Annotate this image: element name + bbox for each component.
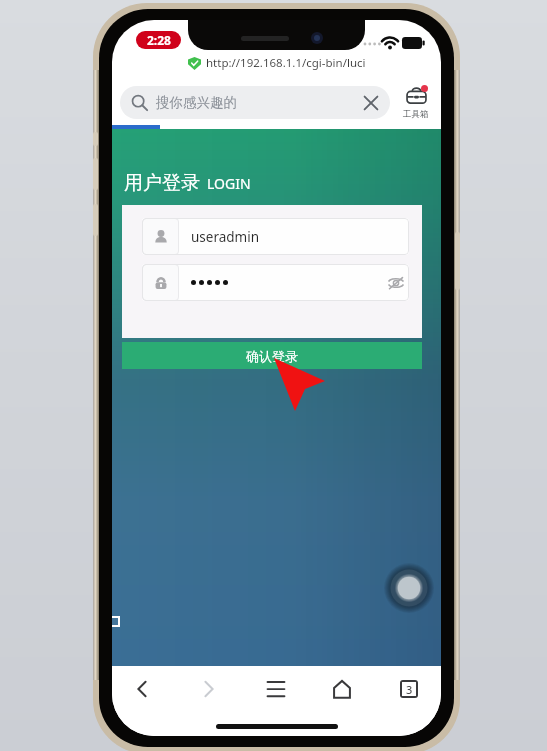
staticText: 3 — [406, 682, 413, 696]
staticText: http://192.168.1.1/cgi-bin/luci — [206, 55, 366, 71]
button[interactable]: 确认登录 — [122, 342, 422, 369]
button[interactable]: Clear search — [363, 95, 379, 111]
button[interactable]: 搜你感兴趣的 — [120, 86, 390, 119]
button[interactable]: Forward — [194, 674, 224, 704]
button[interactable]: Back — [127, 674, 157, 704]
staticText: 用户登录 — [124, 171, 200, 195]
staticText: 工具箱 — [403, 109, 429, 120]
staticText: 2:28 — [147, 32, 171, 48]
button[interactable]: Show password — [142, 264, 409, 301]
staticText: 确认登录 — [246, 348, 298, 364]
staticText: useradmin — [191, 228, 260, 246]
button[interactable]: Menu — [261, 674, 291, 704]
button[interactable]: Show password — [387, 274, 405, 292]
button[interactable]: 工具箱 — [397, 76, 434, 125]
button[interactable]: useradmin — [142, 218, 409, 255]
staticText: LOGIN — [207, 174, 251, 193]
button[interactable]: Tabs, 3 open — [400, 680, 418, 698]
staticText: 搜你感兴趣的 — [156, 94, 237, 111]
button[interactable]: Home — [327, 674, 357, 704]
